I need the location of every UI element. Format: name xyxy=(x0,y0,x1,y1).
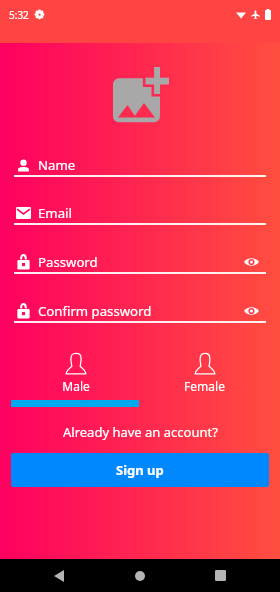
staticText: Password xyxy=(38,253,98,271)
button[interactable]: Female xyxy=(140,352,269,394)
other: Show password xyxy=(244,257,259,267)
staticText: Confirm password xyxy=(38,302,152,320)
staticText: Male xyxy=(62,378,90,394)
other: Show password xyxy=(244,306,259,316)
button[interactable]: Male xyxy=(11,352,140,394)
button[interactable]: Already have an account? xyxy=(0,419,280,445)
staticText: Female xyxy=(184,378,225,394)
button[interactable]: Home xyxy=(120,559,160,592)
staticText: Email xyxy=(38,204,72,222)
staticText: Name xyxy=(38,156,76,174)
button[interactable]: Email xyxy=(14,191,266,225)
button[interactable]: Confirm password xyxy=(14,289,266,323)
button[interactable]: Recent apps xyxy=(200,559,240,592)
staticText: 5:32 xyxy=(9,8,29,22)
button[interactable]: Sign up xyxy=(11,453,269,487)
staticText: Already have an account? xyxy=(63,423,218,441)
staticText: Sign up xyxy=(116,461,164,479)
button[interactable]: Name xyxy=(14,143,266,177)
button[interactable]: Password xyxy=(14,240,266,274)
button[interactable]: Back xyxy=(39,559,79,592)
